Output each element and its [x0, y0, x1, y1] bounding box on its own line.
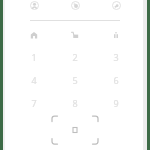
button[interactable]: 2 [62, 49, 88, 65]
button[interactable]: 8 [62, 95, 88, 111]
staticText: 9 [113, 97, 119, 109]
button[interactable]: 9 [103, 95, 129, 111]
staticText: 5 [72, 74, 78, 86]
staticText: 3 [113, 51, 119, 63]
button[interactable]: Search [68, 0, 82, 11]
button[interactable]: Shop [67, 27, 83, 42]
staticText: 4 [31, 74, 37, 86]
button[interactable]: Home [26, 27, 42, 42]
button[interactable]: 7 [21, 95, 47, 111]
staticText: 2 [72, 51, 78, 63]
button[interactable]: 4 [21, 72, 47, 88]
button[interactable]: Stats [108, 27, 124, 42]
staticText: 1 [31, 51, 37, 63]
button[interactable]: Scan code [46, 110, 104, 150]
button[interactable]: 6 [103, 72, 129, 88]
button[interactable]: Settings [109, 0, 123, 11]
button[interactable]: Account [27, 0, 41, 11]
button[interactable]: 3 [103, 49, 129, 65]
button[interactable]: 1 [21, 49, 47, 65]
staticText: 7 [31, 97, 37, 109]
staticText: 6 [113, 74, 119, 86]
staticText: 8 [72, 97, 78, 109]
button[interactable]: 5 [62, 72, 88, 88]
